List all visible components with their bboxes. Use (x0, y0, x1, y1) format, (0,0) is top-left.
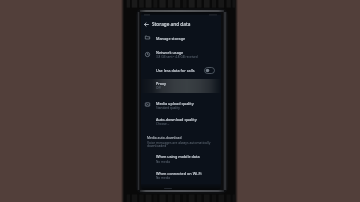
staticText: Use less data for calls (156, 68, 195, 73)
button[interactable]: Manage storage (141, 35, 221, 41)
staticText: Network usage (156, 50, 184, 55)
staticText: Voice messages are always automatically … (147, 140, 211, 148)
button[interactable] (141, 79, 221, 93)
button[interactable]: Use less data for calls (141, 67, 221, 73)
staticText: 3.8 GB sent • 4.8 GB received (156, 55, 198, 59)
button[interactable]: Media upload quality (141, 100, 221, 106)
staticText: Auto-download quality (156, 117, 197, 122)
button[interactable]: Back (142, 20, 150, 28)
staticText: Media auto-download (147, 135, 182, 139)
button[interactable]: Use less data for calls toggle (204, 67, 215, 74)
button[interactable]: Network usage (141, 49, 221, 55)
staticText: Proxy (156, 81, 167, 86)
button[interactable]: Proxy (141, 80, 221, 86)
staticText: Off (156, 86, 161, 90)
button[interactable]: Back (141, 17, 221, 30)
button[interactable]: When using mobile data (141, 153, 221, 159)
staticText: Standard quality (156, 106, 180, 110)
button[interactable]: When connected on Wi-Fi (141, 170, 221, 176)
staticText: Manage storage (156, 36, 186, 41)
staticText: Media upload quality (156, 101, 194, 106)
button[interactable]: Auto-download quality (141, 116, 221, 122)
staticText: Choose... (156, 122, 170, 126)
staticText: No media (156, 160, 171, 164)
staticText: Storage and data (152, 21, 191, 27)
staticText: When connected on Wi-Fi (156, 171, 202, 176)
staticText: No media (156, 176, 171, 180)
staticText: When using mobile data (156, 154, 200, 159)
